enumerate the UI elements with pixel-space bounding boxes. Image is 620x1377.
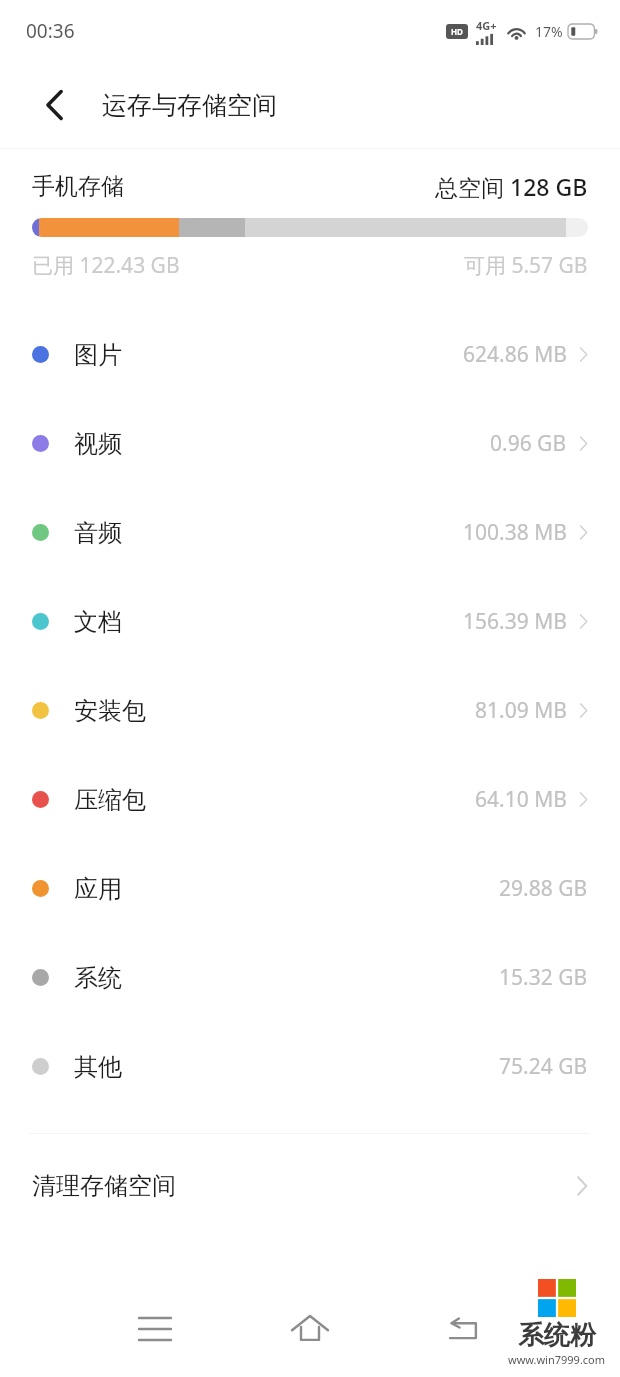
staticText: 17% [535,22,563,41]
staticText: 15.32 GB [499,963,588,992]
button[interactable]: 应用 [0,844,620,933]
staticText: 156.39 MB [463,607,567,636]
button[interactable]: 文档 [0,577,620,666]
staticText: 00:36 [26,18,75,44]
staticText: 清理存储空间 [32,1171,176,1201]
button[interactable]: Recent apps [125,1299,185,1359]
button[interactable]: 音频 [0,488,620,577]
staticText: 压缩包 [74,785,146,815]
staticText: 视频 [74,429,122,459]
staticText: 0.96 GB [490,429,567,458]
staticText: 可用 5.57 GB [464,251,588,280]
button[interactable]: Back [30,80,80,130]
button[interactable]: Home [280,1299,340,1359]
staticText: 系统粉 [518,1319,596,1352]
staticText: 其他 [74,1052,122,1082]
staticText: 29.88 GB [499,874,588,903]
button[interactable]: 系统 [0,933,620,1022]
staticText: 图片 [74,340,122,370]
staticText: 系统 [74,963,122,993]
staticText: 81.09 MB [475,696,567,725]
staticText: 安装包 [74,696,146,726]
button[interactable]: 视频 [0,399,620,488]
staticText: 已用 122.43 GB [32,251,180,280]
button[interactable]: 其他 [0,1022,620,1111]
staticText: 624.86 MB [463,340,567,369]
staticText: 运存与存储空间 [102,90,277,121]
staticText: www.win7999.com [508,1352,606,1367]
staticText: HD [451,26,463,37]
staticText: 100.38 MB [463,518,567,547]
staticText: 手机存储 [32,172,124,201]
button[interactable]: Back [435,1299,495,1359]
button[interactable]: 清理存储空间 [0,1134,620,1238]
staticText: 75.24 GB [499,1052,588,1081]
staticText: 应用 [74,874,122,904]
staticText: 64.10 MB [475,785,567,814]
button[interactable]: 安装包 [0,666,620,755]
staticText: 总空间 128 GB [435,171,588,202]
button[interactable]: 压缩包 [0,755,620,844]
staticText: 4G+ [476,18,497,33]
staticText: 文档 [74,607,122,637]
staticText: 音频 [74,518,122,548]
button[interactable]: 图片 [0,310,620,399]
